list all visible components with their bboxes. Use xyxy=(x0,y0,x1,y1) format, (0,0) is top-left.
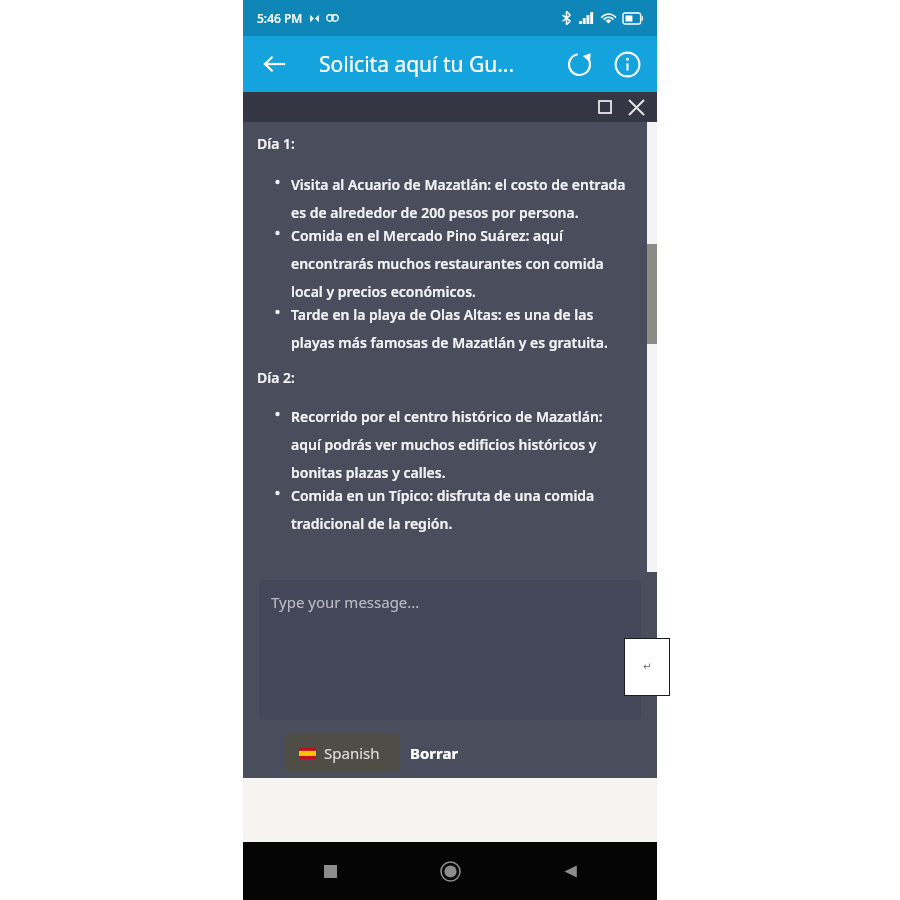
staticText: Tarde en la playa de Olas Altas: es una … xyxy=(291,305,627,352)
button[interactable]: Maximize xyxy=(591,93,619,121)
staticText: Comida en un Típico: disfruta de una com… xyxy=(291,486,627,533)
button[interactable]: Recent apps xyxy=(309,850,351,892)
staticText: ↵ xyxy=(643,661,652,673)
button[interactable]: Borrar xyxy=(404,737,465,769)
staticText: 5:46 PM xyxy=(257,10,303,26)
button[interactable]: Refresh xyxy=(555,40,603,88)
button[interactable]: Type your message... xyxy=(259,580,641,720)
staticText: Día 1: xyxy=(257,134,295,153)
staticText: Type your message... xyxy=(271,592,420,612)
button[interactable]: Back xyxy=(251,40,299,88)
button[interactable]: Spanish xyxy=(285,734,400,772)
button[interactable]: Close xyxy=(621,92,651,122)
staticText: Visita al Acuario de Mazatlán: el costo … xyxy=(291,175,627,222)
staticText: Día 2: xyxy=(257,368,295,387)
staticText: Recorrido por el centro histórico de Maz… xyxy=(291,407,627,482)
staticText: Comida en el Mercado Pino Suárez: aquí e… xyxy=(291,226,627,301)
staticText: Solicita aquí tu Gu... xyxy=(319,50,515,79)
button[interactable]: Information xyxy=(603,40,651,88)
button[interactable]: Home xyxy=(429,850,471,892)
staticText: Borrar xyxy=(410,743,459,763)
staticText: Spanish xyxy=(324,743,380,763)
button[interactable]: Back xyxy=(549,850,591,892)
